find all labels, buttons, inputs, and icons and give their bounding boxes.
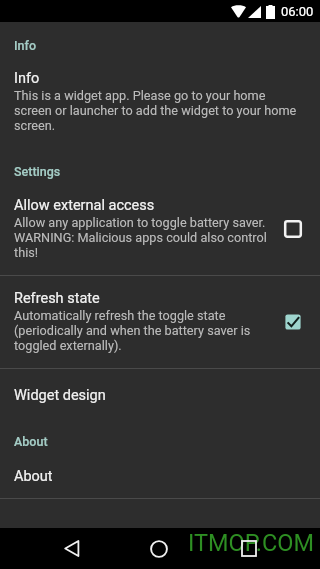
button[interactable]: About: [0, 468, 320, 485]
staticText: Refresh state: [14, 290, 100, 307]
staticText: Widget design: [14, 387, 106, 404]
staticText: Info: [14, 70, 40, 87]
button[interactable]: Home: [126, 528, 192, 569]
button[interactable]: Checked: [270, 299, 316, 345]
button[interactable]: Refresh state: [0, 290, 320, 353]
staticText: ITMOP.COM: [188, 529, 315, 557]
staticText: This is a widget app. Please go to your …: [14, 88, 306, 133]
staticText: Settings: [14, 164, 320, 179]
button[interactable]: Widget design: [0, 387, 320, 404]
staticText: Allow any application to toggle battery …: [14, 215, 272, 260]
staticText: Automatically refresh the toggle state (…: [14, 308, 272, 353]
staticText: Info: [14, 38, 320, 53]
staticText: 06:00: [281, 4, 314, 19]
staticText: About: [14, 468, 53, 485]
button[interactable]: Allow external access: [0, 197, 320, 260]
button[interactable]: Unchecked: [270, 206, 316, 252]
button[interactable]: Info: [0, 70, 320, 133]
button[interactable]: Recent apps: [216, 528, 282, 569]
staticText: About: [14, 434, 320, 449]
button[interactable]: Back: [38, 528, 104, 569]
staticText: Allow external access: [14, 197, 155, 214]
